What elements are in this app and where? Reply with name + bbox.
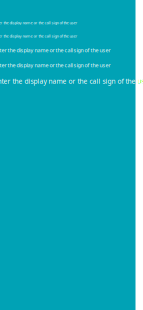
staticText: Enter the display name or the call sign …	[0, 33, 77, 39]
staticText: Enter the display name or the call sign …	[0, 77, 143, 86]
staticText: Enter the display name or the call sign …	[0, 20, 77, 25]
staticText: Enter the display name or the call sign …	[0, 62, 110, 69]
staticText: Enter the display name or the call sign …	[0, 47, 110, 54]
